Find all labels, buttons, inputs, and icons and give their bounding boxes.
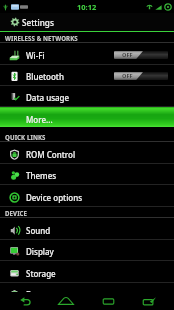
button[interactable]: OFF [114, 72, 168, 80]
staticText: ROM Control [26, 149, 76, 160]
button[interactable]: Back [8, 292, 42, 310]
staticText: Bluetooth [26, 71, 64, 82]
staticText: QUICK LINKS [5, 133, 46, 141]
staticText: WIRELESS & NETWORKS [5, 34, 78, 42]
staticText: 10:12 [77, 2, 97, 12]
button[interactable]: Themes [0, 163, 174, 185]
button[interactable]: Bluetooth [0, 64, 174, 86]
staticText: Themes [26, 170, 57, 181]
button[interactable]: Data usage [0, 86, 174, 107]
button[interactable]: Battery [0, 282, 174, 304]
staticText: DEVICE [5, 209, 28, 217]
staticText: Settings [22, 17, 54, 28]
button[interactable]: OFF [114, 51, 168, 59]
button[interactable]: Device options [0, 185, 174, 207]
button[interactable]: Recent apps [91, 292, 125, 310]
button[interactable]: Display [0, 239, 174, 261]
staticText: Display [26, 246, 54, 257]
button[interactable]: Home [49, 292, 83, 310]
staticText: Sound [26, 225, 51, 236]
staticText: OFF [122, 72, 133, 80]
staticText: Storage [26, 268, 56, 279]
button[interactable]: Sound [0, 218, 174, 240]
button[interactable]: Storage [0, 261, 174, 283]
staticText: Battery [26, 289, 55, 300]
button[interactable]: Screenshot [132, 292, 166, 310]
staticText: Device options [26, 192, 83, 203]
staticText: More... [26, 114, 53, 125]
staticText: OFF [122, 51, 133, 59]
staticText: Wi-Fi [26, 50, 45, 61]
button[interactable]: More... [0, 107, 174, 129]
button[interactable]: Wi-Fi [0, 43, 174, 65]
staticText: Data usage [26, 92, 70, 103]
button[interactable]: ROM Control [0, 142, 174, 164]
